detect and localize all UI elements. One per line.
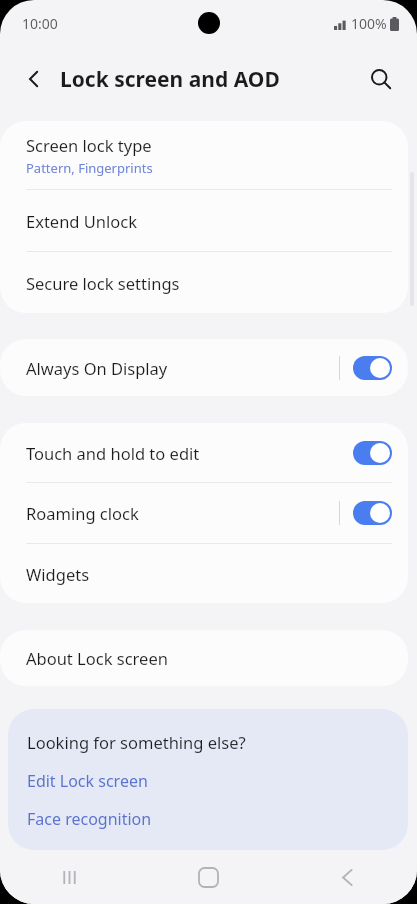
button[interactable]: Toggle on xyxy=(353,501,392,525)
button[interactable]: Recent apps xyxy=(0,851,139,904)
staticText: Lock screen and AOD xyxy=(60,65,280,94)
button[interactable]: Back xyxy=(278,851,417,904)
staticText: Extend Unlock xyxy=(26,210,138,232)
staticText: 10:00 xyxy=(22,14,58,33)
button[interactable]: Secure lock settings xyxy=(0,252,408,313)
button[interactable]: Roaming clock xyxy=(0,483,408,543)
button[interactable]: Home xyxy=(139,851,278,904)
staticText: About Lock screen xyxy=(26,647,168,669)
button[interactable]: Always On Display xyxy=(0,339,408,396)
staticText: Pattern, Fingerprints xyxy=(26,159,153,177)
button[interactable]: Back xyxy=(12,57,56,101)
button[interactable]: Toggle on xyxy=(353,441,392,465)
button[interactable]: Toggle on xyxy=(353,356,392,380)
staticText: Widgets xyxy=(26,563,90,585)
staticText: 100% xyxy=(351,14,387,33)
staticText: Always On Display xyxy=(26,357,339,379)
button[interactable]: About Lock screen xyxy=(0,630,408,686)
button[interactable]: Face recognition xyxy=(8,800,408,838)
staticText: Screen lock type xyxy=(26,134,152,156)
staticText: Edit Lock screen xyxy=(27,770,148,792)
staticText: Face recognition xyxy=(27,808,152,830)
staticText: Secure lock settings xyxy=(26,272,180,294)
button[interactable]: Touch and hold to edit xyxy=(0,423,408,482)
button[interactable]: Screen lock type xyxy=(0,121,408,189)
staticText: Looking for something else? xyxy=(27,731,246,753)
staticText: Roaming clock xyxy=(26,502,339,524)
button[interactable]: Edit Lock screen xyxy=(8,762,408,800)
button[interactable]: Widgets xyxy=(0,544,408,603)
staticText: Touch and hold to edit xyxy=(26,442,353,464)
button[interactable]: Extend Unlock xyxy=(0,190,408,251)
button[interactable]: Search xyxy=(359,57,403,101)
